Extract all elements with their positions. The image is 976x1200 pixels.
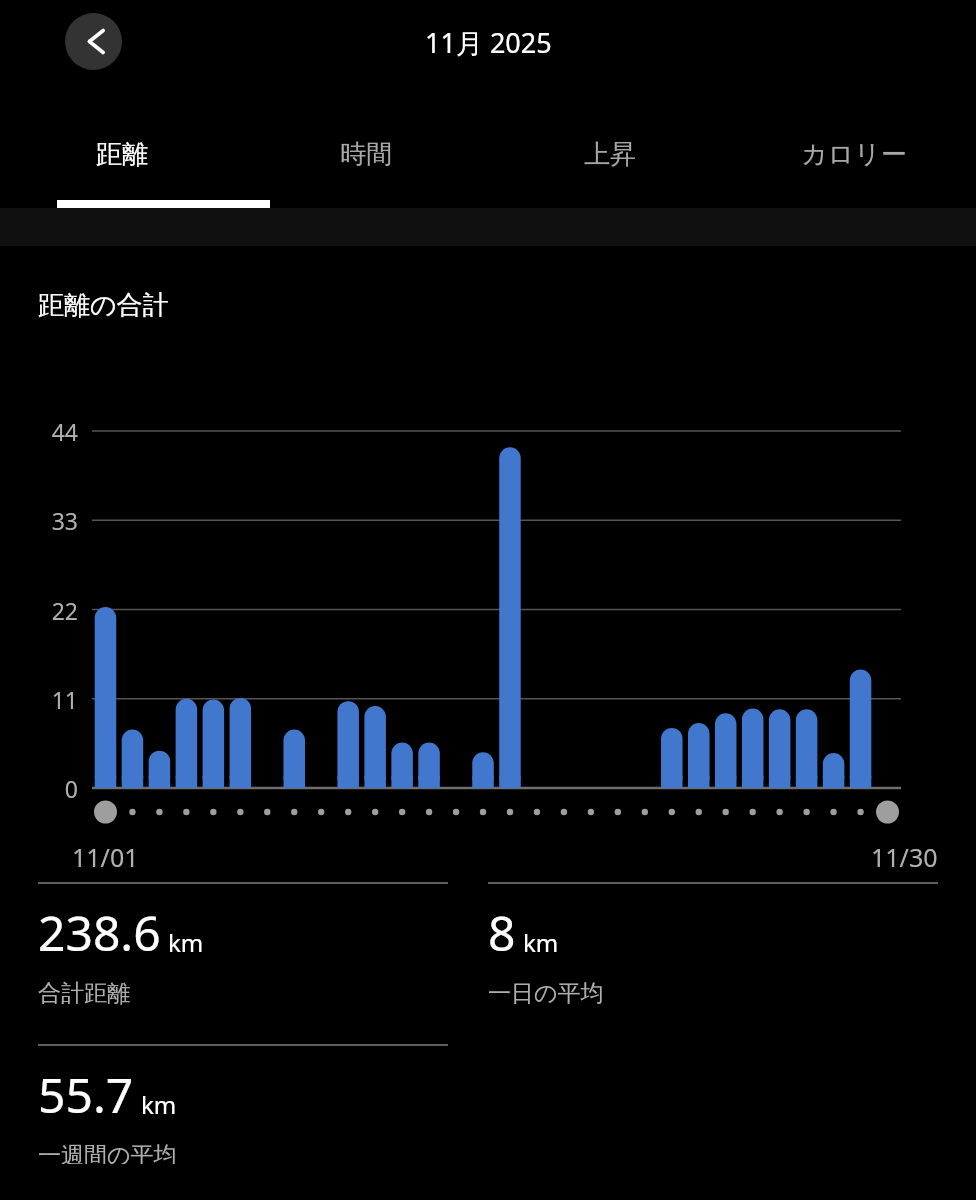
staticText: km [523, 926, 559, 959]
staticText: 合計距離 [38, 979, 130, 1008]
staticText: 238.6 [38, 900, 161, 965]
button[interactable]: カロリー [732, 104, 976, 208]
button[interactable]: 距離 [0, 104, 244, 208]
button[interactable]: 上昇 [488, 104, 732, 208]
staticText: 0 [20, 773, 78, 804]
staticText: 8 [488, 900, 516, 965]
staticText: 距離の合計 [38, 289, 169, 322]
staticText: 44 [20, 416, 78, 447]
staticText: カロリー [801, 138, 907, 171]
button[interactable]: 8 [488, 882, 938, 1044]
button[interactable]: 時間 [244, 104, 488, 208]
staticText: 11 [20, 684, 78, 715]
staticText: 22 [20, 595, 78, 626]
staticText: 11/30 [871, 840, 938, 874]
staticText: km [141, 1088, 177, 1121]
staticText: 33 [20, 505, 78, 536]
button[interactable]: Back [65, 13, 122, 70]
staticText: 上昇 [584, 138, 636, 171]
staticText: 一日の平均 [488, 979, 604, 1008]
staticText: 時間 [340, 138, 392, 171]
staticText: 11月 2025 [425, 24, 552, 61]
staticText: 一週間の平均 [38, 1141, 177, 1164]
staticText: 11/01 [72, 840, 139, 874]
button[interactable]: 55.7 [38, 1044, 448, 1200]
staticText: km [168, 926, 204, 959]
button[interactable]: 238.6 [38, 882, 448, 1044]
staticText: 55.7 [38, 1062, 134, 1127]
staticText: 距離 [96, 138, 148, 171]
